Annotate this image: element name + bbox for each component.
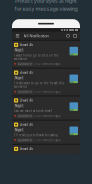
button[interactable]: Edward Ab <box>12 41 80 68</box>
staticText: 5:30 <box>34 138 41 142</box>
staticText: ♥ <box>14 90 16 93</box>
staticText: Edward Ab <box>20 99 34 102</box>
staticText: (minutes ago) <box>42 138 61 142</box>
staticText: (minutes ago) <box>42 114 61 118</box>
button[interactable]: Edward Ab <box>12 69 80 95</box>
staticText: Protect your eyes at night <box>15 0 77 4</box>
staticText: 02/04/19 <box>18 90 32 93</box>
staticText: ♥ <box>14 114 16 117</box>
staticText: ♥ <box>14 139 16 142</box>
staticText: 5:30 <box>34 90 41 93</box>
staticText: ♥ <box>14 62 16 65</box>
staticText: Can we meet at lunch time? <box>14 109 52 113</box>
staticText: Nigel <box>15 104 23 107</box>
staticText: Edward Ab <box>20 147 34 151</box>
staticText: 02/04/19 <box>18 62 32 66</box>
staticText: Nigel <box>15 76 23 80</box>
staticText: Edward Ab <box>20 43 34 47</box>
staticText: Edward Ab <box>20 123 34 126</box>
staticText: (minutes ago) <box>42 62 61 66</box>
staticText: I'll really guess thanks for asking <box>14 133 58 137</box>
button[interactable]: Menu <box>13 32 21 40</box>
staticText: I want him to go to bed on the weekend <box>14 54 59 61</box>
staticText: I really want to go to the beach this we… <box>14 81 64 89</box>
staticText: 02/04/19 <box>18 114 32 118</box>
staticText: 02/04/19 <box>18 138 32 142</box>
staticText: Edward Ab <box>20 71 34 74</box>
button[interactable]: Edward Ab <box>12 96 80 119</box>
staticText: All Notification <box>23 33 48 38</box>
staticText: Nigel <box>15 48 23 52</box>
staticText: (minutes ago) <box>42 90 61 93</box>
button[interactable]: Edward Ab <box>12 145 80 154</box>
button[interactable]: Search <box>64 32 71 40</box>
staticText: 5:30 <box>34 114 41 118</box>
staticText: for easy message viewing <box>14 5 77 12</box>
button[interactable]: Edward Ab <box>12 121 80 144</box>
staticText: Nigel <box>15 128 23 132</box>
button[interactable]: More options <box>71 32 78 40</box>
staticText: 5:30 <box>34 62 41 66</box>
